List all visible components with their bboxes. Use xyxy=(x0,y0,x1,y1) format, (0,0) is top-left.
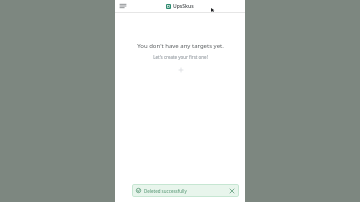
staticText: UpsSkus xyxy=(173,3,194,10)
button[interactable]: Create target xyxy=(178,67,183,72)
button[interactable]: Menu xyxy=(119,2,127,10)
staticText: Let's create your first one! xyxy=(153,54,208,60)
staticText: You don't have any targets yet. xyxy=(137,42,224,50)
button[interactable]: UpsSkus xyxy=(166,3,194,10)
button[interactable]: Dismiss xyxy=(229,188,235,194)
staticText: Deleted successfully xyxy=(144,188,229,194)
button[interactable]: Deleted successfully xyxy=(132,184,239,197)
